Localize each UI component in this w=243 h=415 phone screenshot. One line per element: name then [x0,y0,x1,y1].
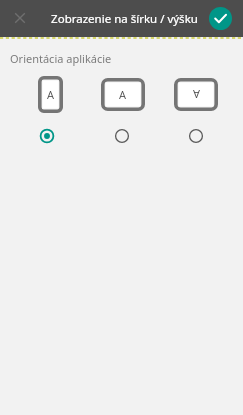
button[interactable]: Confirm [209,7,232,30]
button[interactable]: Close [10,8,30,28]
staticText: Zobrazenie na šírku / výšku [51,11,198,27]
button[interactable]: Portrait [38,76,63,113]
button[interactable]: Portrait [37,126,57,146]
button[interactable]: Landscape reversed [174,78,218,111]
button[interactable]: Landscape reversed [186,126,206,146]
button[interactable]: Landscape [101,78,145,111]
staticText: Orientácia aplikácie [10,51,112,66]
staticText: A [192,87,200,102]
staticText: A [47,87,55,102]
button[interactable]: Landscape [112,126,132,146]
staticText: A [119,87,127,102]
